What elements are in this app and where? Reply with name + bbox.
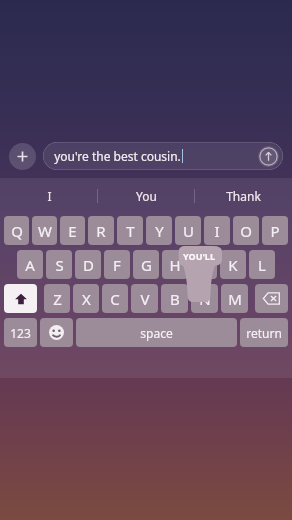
button[interactable]: P [262,216,288,245]
button[interactable]: Send [258,146,279,167]
button[interactable]: M [221,284,248,313]
button[interactable]: space [76,318,237,347]
staticText: P [270,221,280,241]
staticText: L [258,255,266,275]
button[interactable]: Z [44,284,70,313]
staticText: S [55,255,64,275]
staticText: YOU'LL [183,250,215,262]
staticText: J [202,255,207,275]
button[interactable]: return [240,318,288,347]
staticText: you're the best cousin. [54,148,181,164]
button[interactable]: B [161,284,188,313]
staticText: Z [53,289,62,309]
button[interactable]: Y [146,216,172,245]
staticText: N [199,289,211,309]
button[interactable]: you're the best cousin. [43,142,283,170]
staticText: E [68,221,77,241]
button[interactable]: You [98,178,195,214]
staticText: O [240,221,252,241]
button[interactable]: Q [4,216,29,245]
staticText: W [38,221,52,241]
staticText: F [113,255,121,275]
button[interactable]: N [191,284,218,313]
staticText: I [47,188,52,204]
staticText: Q [11,221,23,241]
button[interactable]: K [220,250,246,279]
button[interactable]: 123 [4,318,37,347]
staticText: R [96,221,106,241]
button[interactable]: S [46,250,72,279]
button[interactable]: E [60,216,85,245]
button[interactable]: I [204,216,230,245]
button[interactable]: Add attachment [9,143,36,170]
staticText: return [246,325,282,341]
button[interactable]: Thank [195,178,292,214]
staticText: C [110,289,120,309]
button[interactable]: A [17,250,43,279]
staticText: V [140,289,150,309]
button[interactable]: J [191,250,217,279]
staticText: M [228,289,242,309]
staticText: G [141,255,152,275]
staticText: space [140,325,173,341]
staticText: B [170,289,180,309]
button[interactable]: O [233,216,259,245]
button[interactable]: F [104,250,130,279]
staticText: Thank [226,188,261,204]
staticText: K [228,255,238,275]
button[interactable]: H [162,250,188,279]
staticText: You [136,188,157,204]
staticText: T [126,221,135,241]
staticText: A [25,255,35,275]
button[interactable]: D [75,250,101,279]
button[interactable]: Emoji [40,318,73,347]
button[interactable]: R [88,216,114,245]
button[interactable]: U [175,216,201,245]
button[interactable]: W [32,216,57,245]
staticText: U [183,221,194,241]
button[interactable]: C [102,284,128,313]
button[interactable]: X [73,284,99,313]
staticText: 123 [10,325,31,341]
button[interactable]: Backspace [255,284,288,313]
button[interactable]: I [0,178,98,214]
staticText: Y [155,221,164,241]
button[interactable]: V [131,284,158,313]
staticText: H [169,255,181,275]
button[interactable]: Shift [4,284,37,313]
staticText: X [82,289,91,309]
button[interactable]: T [117,216,143,245]
staticText: I [214,221,220,241]
staticText: D [83,255,94,275]
button[interactable]: G [133,250,159,279]
button[interactable]: L [249,250,275,279]
